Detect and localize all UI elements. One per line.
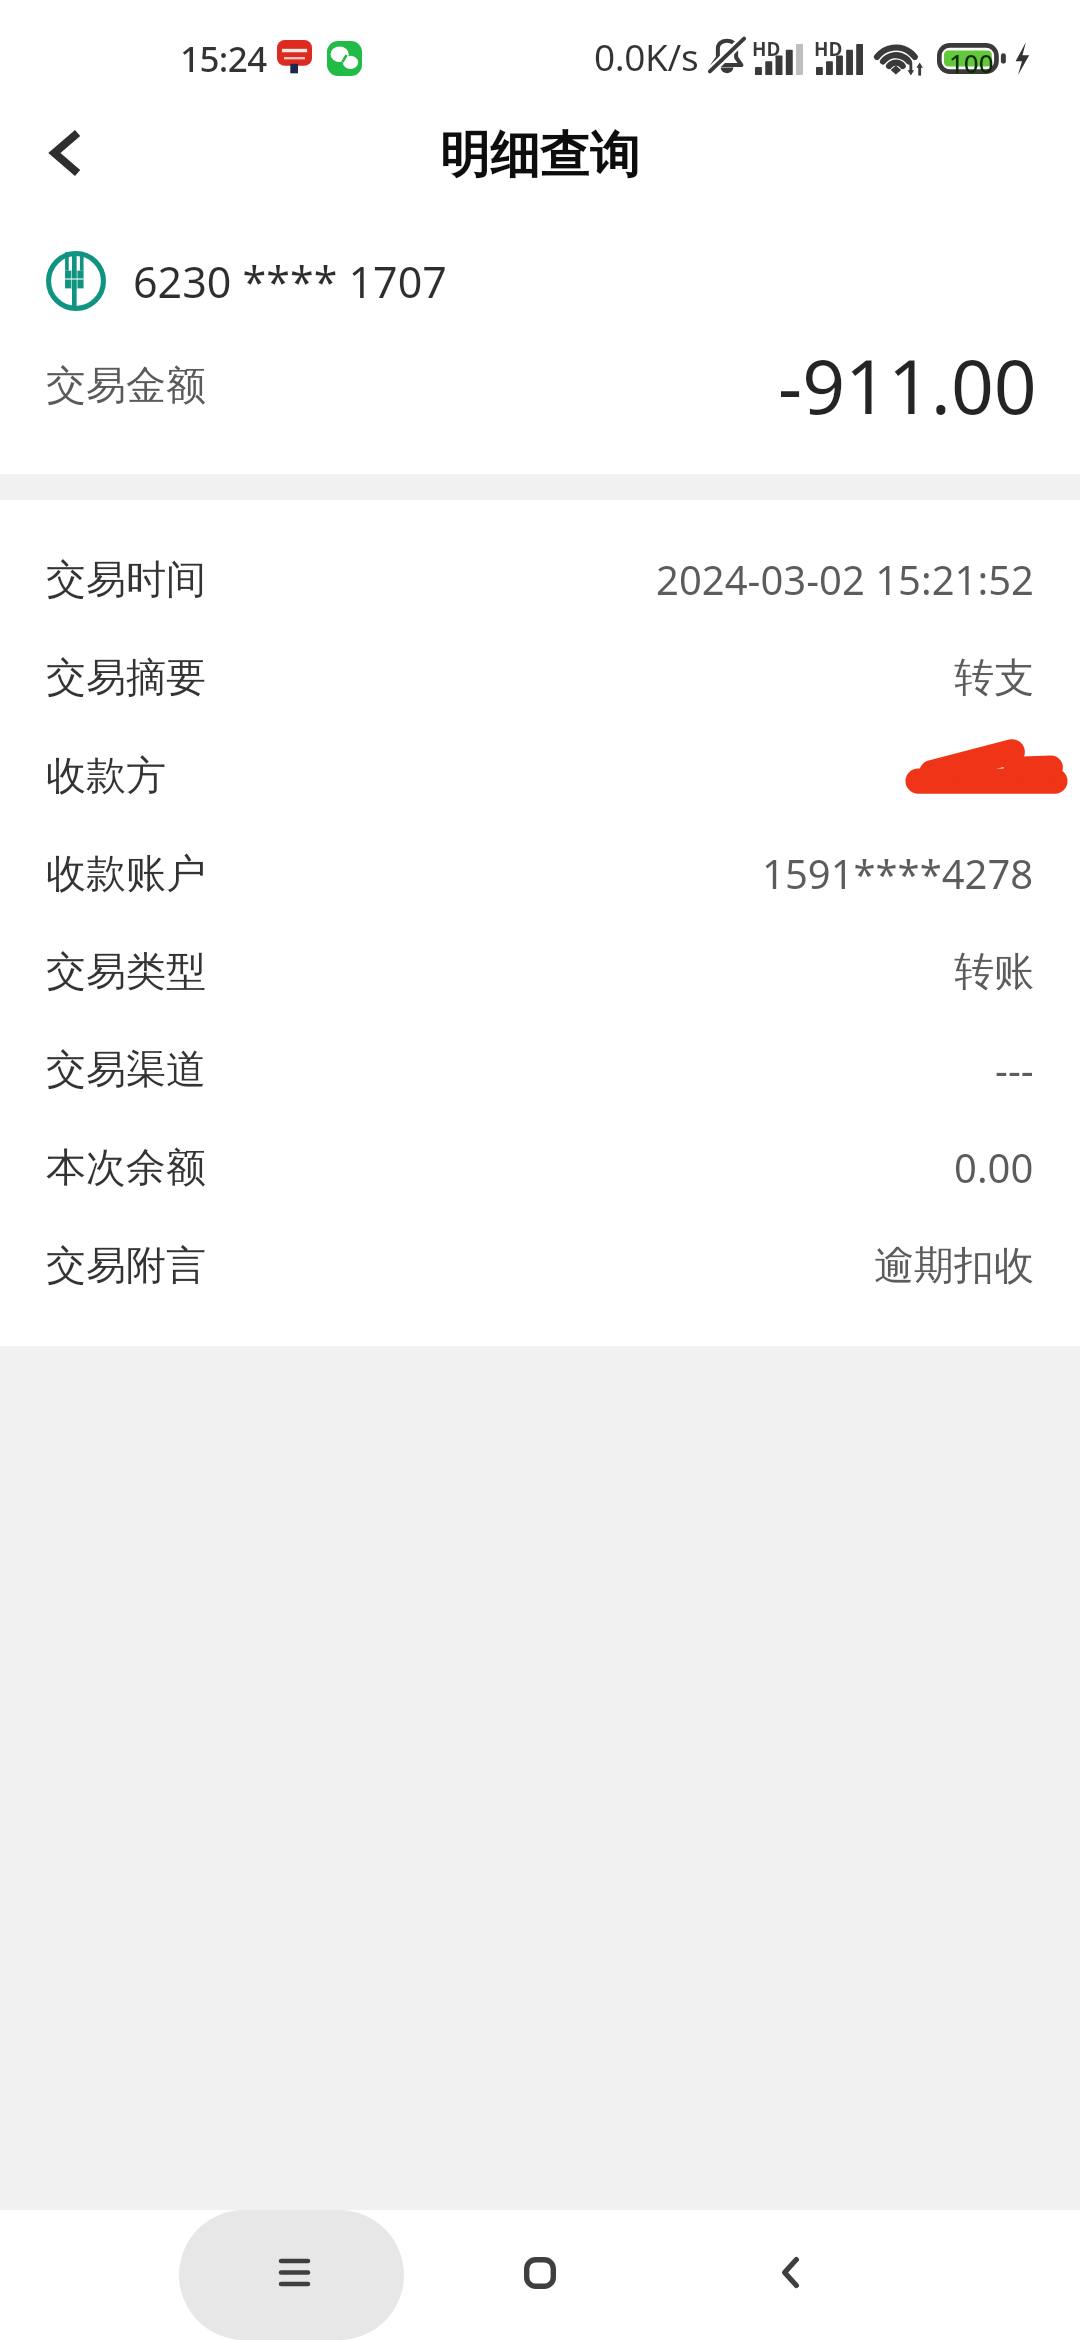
- staticText: 交易时间: [46, 554, 206, 604]
- button[interactable]: Home: [475, 2210, 605, 2340]
- button[interactable]: 交易摘要: [0, 628, 1080, 726]
- staticText: 2024-03-02 15:21:52: [656, 552, 1034, 606]
- button[interactable]: 交易附言: [0, 1216, 1080, 1314]
- staticText: 转账: [954, 946, 1034, 996]
- staticText: 交易类型: [46, 946, 206, 996]
- staticText: -911.00: [778, 334, 1037, 436]
- button[interactable]: 交易时间: [0, 530, 1080, 628]
- staticText: 0.00: [954, 1140, 1034, 1194]
- staticText: ---: [995, 1042, 1034, 1096]
- button[interactable]: 交易渠道: [0, 1020, 1080, 1118]
- staticText: 收款方: [46, 750, 166, 800]
- staticText: 6230 **** 1707: [133, 252, 447, 311]
- staticText: 1591****4278: [762, 846, 1034, 900]
- staticText: HD: [814, 36, 843, 62]
- staticText: 转支: [954, 652, 1034, 702]
- button[interactable]: 收款方: [0, 726, 1080, 824]
- staticText: 0.0K/s: [594, 31, 699, 81]
- button[interactable]: 交易类型: [0, 922, 1080, 1020]
- button[interactable]: 本次余额: [0, 1118, 1080, 1216]
- button[interactable]: Back: [725, 2210, 855, 2340]
- staticText: 明细查询: [440, 124, 640, 187]
- staticText: 本次余额: [46, 1142, 206, 1192]
- staticText: 收款账户: [46, 848, 206, 898]
- staticText: 15:24: [180, 35, 267, 83]
- staticText: 交易附言: [46, 1240, 206, 1290]
- staticText: 交易摘要: [46, 652, 206, 702]
- button[interactable]: 收款账户: [0, 824, 1080, 922]
- staticText: 交易渠道: [46, 1044, 206, 1094]
- staticText: 交易金额: [46, 360, 206, 410]
- button[interactable]: 6230 **** 1707: [0, 251, 1080, 311]
- staticText: 逾期扣收: [874, 1240, 1034, 1290]
- staticText: HD: [752, 36, 781, 62]
- button[interactable]: Back: [8, 100, 118, 205]
- button[interactable]: Recent apps: [179, 2210, 404, 2340]
- staticText: 100: [949, 45, 994, 80]
